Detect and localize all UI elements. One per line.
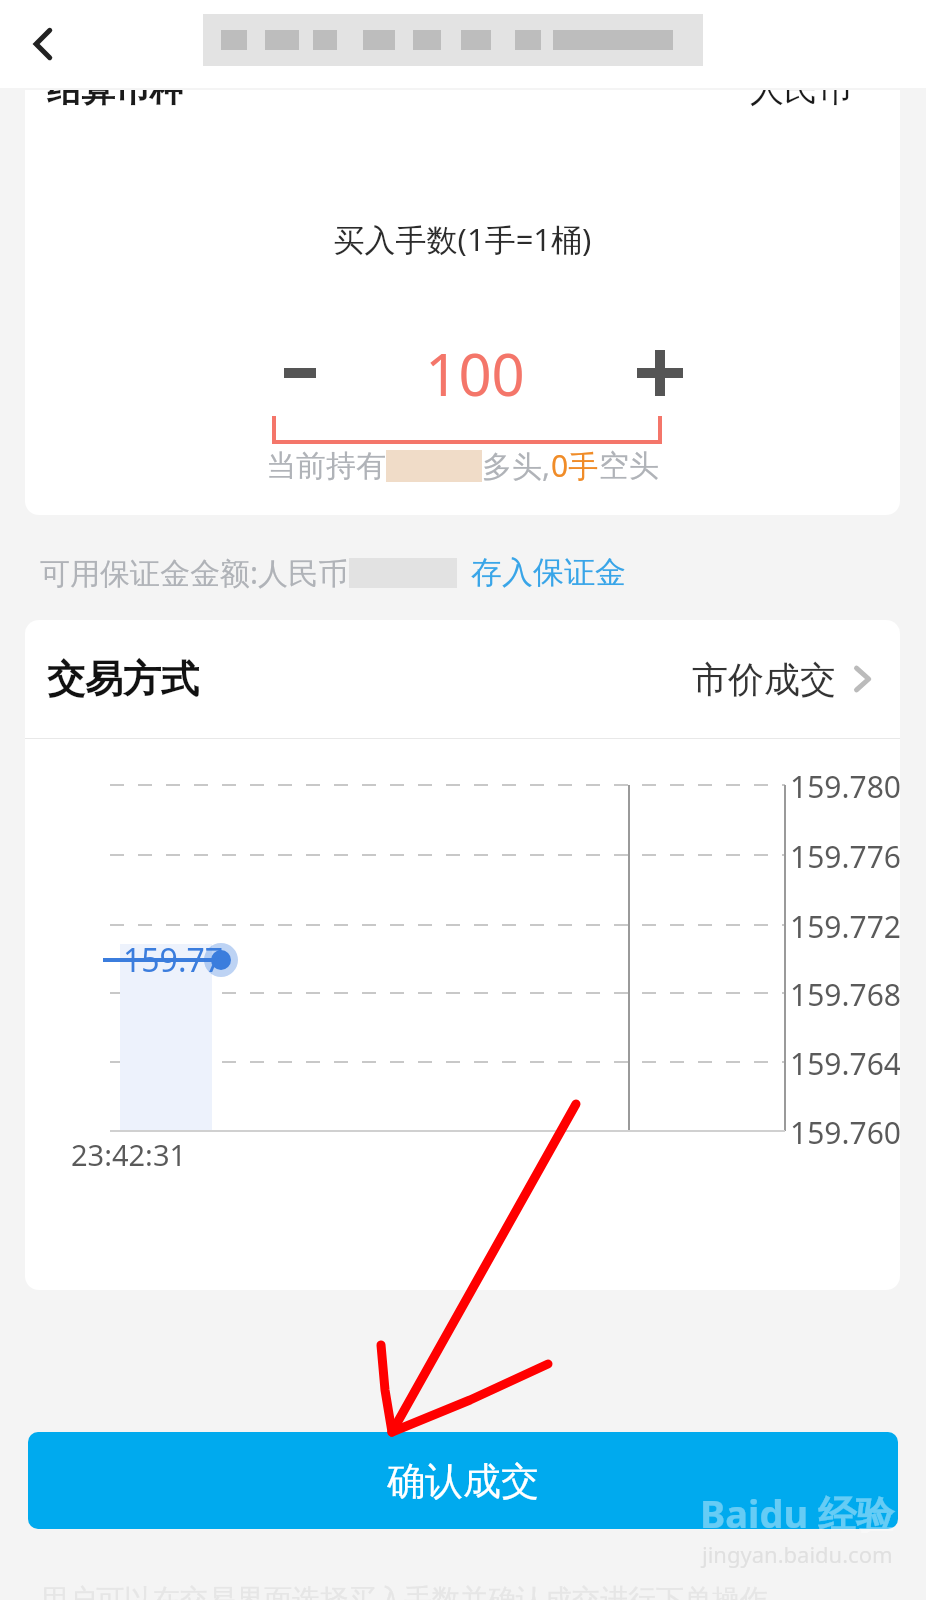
staticText: 确认成交 [387, 1457, 539, 1505]
staticText: 用户可以在交易界面选择买入手数并确认成交进行下单操作 [40, 1582, 768, 1600]
staticText: 人民币 [750, 90, 852, 111]
staticText: 0手 [551, 445, 599, 486]
staticText: 159.760 [790, 1112, 900, 1153]
staticText: 市价成交 [692, 657, 836, 702]
staticText: 买入手数(1手=1桶) [25, 218, 900, 260]
staticText: 交易方式 [47, 655, 199, 703]
staticText: 空头 [599, 447, 659, 485]
staticText: 159.780 [790, 766, 900, 807]
button[interactable]: 存入保证金 [471, 553, 626, 592]
staticText: 100 [360, 334, 590, 413]
staticText: 159.768 [790, 974, 900, 1015]
staticText: 23:42:31 [71, 1135, 187, 1174]
staticText: 结算币种 [47, 90, 183, 111]
button[interactable]: 确认成交 [28, 1432, 898, 1529]
staticText: 可用保证金金额:人民币 [40, 552, 349, 593]
button[interactable]: 交易方式 [25, 620, 900, 738]
button[interactable]: Decrease [240, 318, 360, 428]
staticText: 159.77 [123, 938, 224, 982]
staticText: 159.776 [790, 836, 900, 877]
button[interactable]: Increase [600, 318, 720, 428]
staticText: 多头, [482, 445, 551, 486]
staticText: 159.772 [790, 906, 900, 947]
staticText: 159.764 [790, 1043, 900, 1084]
staticText: Baidu 经验 [700, 1487, 894, 1539]
staticText: 当前持有 [266, 447, 386, 485]
button[interactable]: Back [8, 8, 80, 80]
staticText: 存入保证金 [471, 553, 626, 592]
staticText: jingyan.baidu.com [702, 1539, 893, 1569]
